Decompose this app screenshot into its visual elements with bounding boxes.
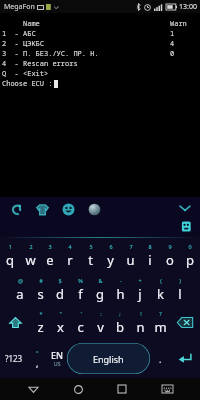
staticText: t [88,251,93,269]
staticText: . [159,353,162,365]
staticText: , [36,357,39,369]
staticText: $ [58,277,62,284]
button[interactable]: Home [67,378,89,400]
staticText: 5 [89,243,93,250]
button[interactable]: ' [70,306,90,339]
staticText: * [39,310,43,317]
button[interactable]: Shift [0,306,30,339]
button[interactable]: Change language [47,339,67,378]
button[interactable]: . [150,339,170,378]
staticText: ) [179,277,181,284]
staticText: 8 [148,243,152,250]
staticText: Warn [170,19,187,29]
button[interactable]: Enter [170,339,200,378]
staticText: Choose ECU : [2,79,53,89]
staticText: # [39,277,43,284]
button[interactable]: English [67,343,150,374]
staticText: k [157,285,164,303]
staticText: c [77,318,84,336]
button[interactable]: 9 [160,238,180,273]
button[interactable]: $ [50,273,70,306]
button[interactable]: Theme [86,201,103,218]
staticText: l [178,285,182,303]
button[interactable]: & [90,273,110,306]
button[interactable]: 5 [80,238,100,273]
button[interactable]: @ [10,273,30,306]
button[interactable]: : [90,306,110,339]
button[interactable]: - [110,273,130,306]
staticText: ; [119,310,121,317]
staticText: ! [140,310,142,317]
staticText: x [57,318,64,336]
staticText: v [97,318,104,336]
staticText: 4 [68,243,72,250]
button[interactable]: Keyboard [156,378,178,400]
staticText: a [16,285,24,303]
staticText: 1 [8,243,12,250]
staticText: f [78,285,83,303]
staticText: s [37,285,44,303]
button[interactable]: Recents [111,378,133,400]
staticText: 1 - АБС [2,29,36,39]
staticText: m [154,318,167,336]
button[interactable]: " [50,306,70,339]
staticText: Name [2,19,40,29]
button[interactable]: 0 [180,238,200,273]
staticText: 3 [48,243,52,250]
button[interactable]: ; [110,306,130,339]
button[interactable]: ) [170,273,190,306]
button[interactable]: 3 [40,238,60,273]
button[interactable]: ! [130,306,150,339]
button[interactable]: Clothing sticker [34,201,51,218]
button[interactable]: * [30,306,50,339]
button[interactable]: 4 [60,238,80,273]
staticText: EN [51,349,63,361]
button[interactable]: Emoji [60,201,77,218]
staticText: 13:00 [179,2,197,12]
staticText: @ [18,277,23,284]
staticText: p [186,251,194,269]
staticText: 2 [29,243,33,250]
staticText: " [59,310,62,317]
staticText: English [93,353,124,365]
staticText: u [126,251,135,269]
staticText: ( [160,277,162,284]
button[interactable]: # [30,273,50,306]
staticText: h [116,285,125,303]
staticText: w [25,251,36,269]
button[interactable]: Stickers [180,220,193,233]
button[interactable]: 6 [100,238,120,273]
staticText: + [138,277,142,284]
staticText: g [96,285,104,303]
staticText: r [67,251,73,269]
staticText: e [46,251,54,269]
staticText: 7 [129,243,133,250]
staticText: d [56,285,64,303]
button[interactable]: ? [150,306,170,339]
staticText: Q - <Exit> [2,69,49,79]
staticText: US [54,361,61,368]
button[interactable]: 2 [20,238,40,273]
button[interactable]: Back [22,378,44,400]
button[interactable]: Collapse toolbar [178,201,192,215]
staticText: ? [159,310,162,317]
staticText: i [148,251,152,269]
staticText: 9 [168,243,172,250]
button[interactable]: % [70,273,90,306]
button[interactable]: ?123 [0,339,27,378]
button[interactable]: + [130,273,150,306]
staticText: ?123 [5,353,23,364]
staticText: 3 - П. БЕЗ./УС. ПР. Н. [2,49,99,59]
button[interactable]: Undo [8,201,25,218]
button[interactable]: Backspace [170,306,200,339]
staticText: 4 [170,39,175,49]
staticText: % [78,277,83,284]
staticText: : [100,310,102,317]
button[interactable]: ( [150,273,170,306]
staticText: q [6,251,14,269]
button[interactable]: 7 [120,238,140,273]
staticText: 6 [109,243,113,250]
button[interactable]: ° [27,339,47,378]
button[interactable]: 8 [140,238,160,273]
button[interactable]: 1 [0,238,20,273]
